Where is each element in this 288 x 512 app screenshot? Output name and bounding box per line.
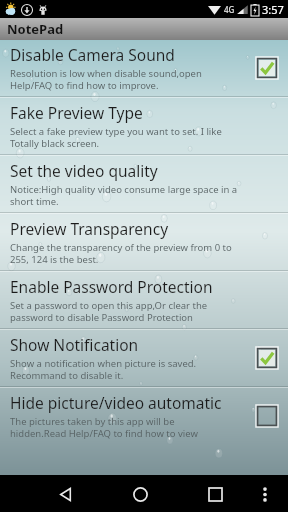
button[interactable]: More options	[250, 479, 280, 509]
button[interactable]: Set the video quality	[0, 156, 288, 212]
button[interactable]: Disable Camera Sound	[0, 40, 288, 96]
button[interactable]: Show Notification toggle	[254, 345, 280, 371]
staticText: Fake Preview Type	[10, 102, 143, 123]
button[interactable]: Home	[123, 477, 157, 511]
staticText: 4G	[224, 4, 235, 15]
staticText: Disable Camera Sound	[10, 44, 175, 65]
staticText: Set the video quality	[10, 160, 158, 181]
button[interactable]: Show Notification	[0, 330, 288, 386]
staticText: Select a fake preview type you want to s…	[10, 125, 222, 150]
staticText: The pictures taken by this app will be h…	[10, 415, 198, 440]
button[interactable]: Hide picture/video automatic toggle	[254, 403, 280, 429]
staticText: NotePad	[7, 20, 64, 38]
staticText: Hide picture/video automatic	[10, 392, 222, 413]
button[interactable]: Hide picture/video automatic	[0, 388, 288, 444]
staticText: Change the transparency of the preview f…	[10, 241, 232, 266]
staticText: 3:57	[262, 2, 284, 17]
button[interactable]: Back	[48, 477, 82, 511]
button[interactable]: Fake Preview Type	[0, 98, 288, 154]
button[interactable]: Recent apps	[198, 477, 232, 511]
staticText: Resolution is low when disable sound,ope…	[10, 67, 202, 92]
staticText: Enable Password Protection	[10, 276, 213, 297]
staticText: Notice:High quality video consume large …	[10, 183, 238, 208]
button[interactable]: Enable Password Protection	[0, 272, 288, 328]
staticText: Set a password to open this app,Or clear…	[10, 299, 208, 324]
staticText: Show a notification when picture is save…	[10, 357, 197, 382]
staticText: Preview Transparency	[10, 218, 169, 239]
staticText: Show Notification	[10, 334, 139, 355]
button[interactable]: Preview Transparency	[0, 214, 288, 270]
button[interactable]: Disable Camera Sound toggle	[254, 55, 280, 81]
